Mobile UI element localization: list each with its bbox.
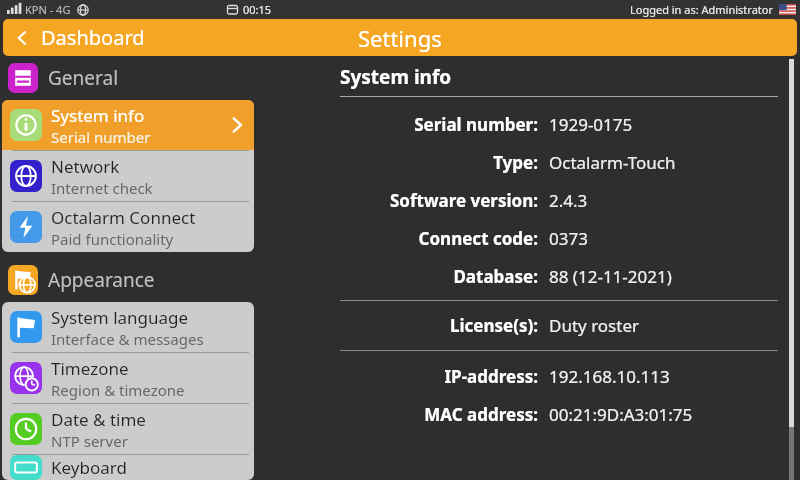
button[interactable]: Keyboard	[2, 455, 254, 480]
staticText: Octalarm-Touch	[549, 151, 676, 174]
button[interactable]: System info	[2, 100, 254, 150]
staticText: Interface & messages	[51, 329, 204, 349]
staticText: Timezone	[51, 357, 129, 380]
staticText: Connect code:	[340, 227, 538, 250]
staticText: IP-address:	[340, 365, 538, 388]
staticText: Paid functionality	[51, 229, 174, 249]
button[interactable]: Timezone	[2, 353, 254, 403]
staticText: Serial number:	[340, 113, 538, 136]
staticText: 192.168.10.113	[549, 365, 670, 388]
staticText: Network	[51, 155, 120, 178]
staticText: Dashboard	[41, 24, 145, 51]
staticText: NTP server	[51, 431, 128, 451]
staticText: System info	[340, 64, 452, 90]
button[interactable]: Date & time	[2, 404, 254, 454]
staticText: Date & time	[51, 408, 146, 431]
staticText: Software version:	[340, 189, 538, 212]
staticText: System info	[51, 104, 145, 127]
staticText: Appearance	[48, 267, 155, 293]
staticText: KPN - 4G	[25, 2, 71, 17]
staticText: License(s):	[340, 314, 538, 337]
staticText: General	[48, 65, 119, 91]
staticText: 0373	[549, 227, 588, 250]
staticText: 88 (12-11-2021)	[549, 265, 672, 288]
button[interactable]: System language	[2, 302, 254, 352]
staticText: Serial number	[51, 127, 151, 147]
staticText: Octalarm Connect	[51, 206, 196, 229]
staticText: 1929-0175	[549, 113, 633, 136]
staticText: 2.4.3	[549, 189, 588, 212]
staticText: Keyboard	[51, 456, 127, 479]
button[interactable]: Octalarm Connect	[2, 202, 254, 252]
button[interactable]: Network	[2, 151, 254, 201]
staticText: Internet check	[51, 178, 153, 198]
staticText: MAC address:	[340, 403, 538, 426]
button[interactable]: Dashboard	[3, 19, 155, 56]
staticText: 00:21:9D:A3:01:75	[549, 403, 693, 426]
staticText: Database:	[340, 265, 538, 288]
staticText: Settings	[358, 23, 442, 53]
staticText: Logged in as: Administrator	[630, 2, 773, 17]
staticText: Region & timezone	[51, 380, 185, 400]
staticText: Duty roster	[549, 314, 639, 337]
staticText: System language	[51, 306, 189, 329]
staticText: 00:15	[243, 2, 272, 17]
staticText: Type:	[340, 151, 538, 174]
